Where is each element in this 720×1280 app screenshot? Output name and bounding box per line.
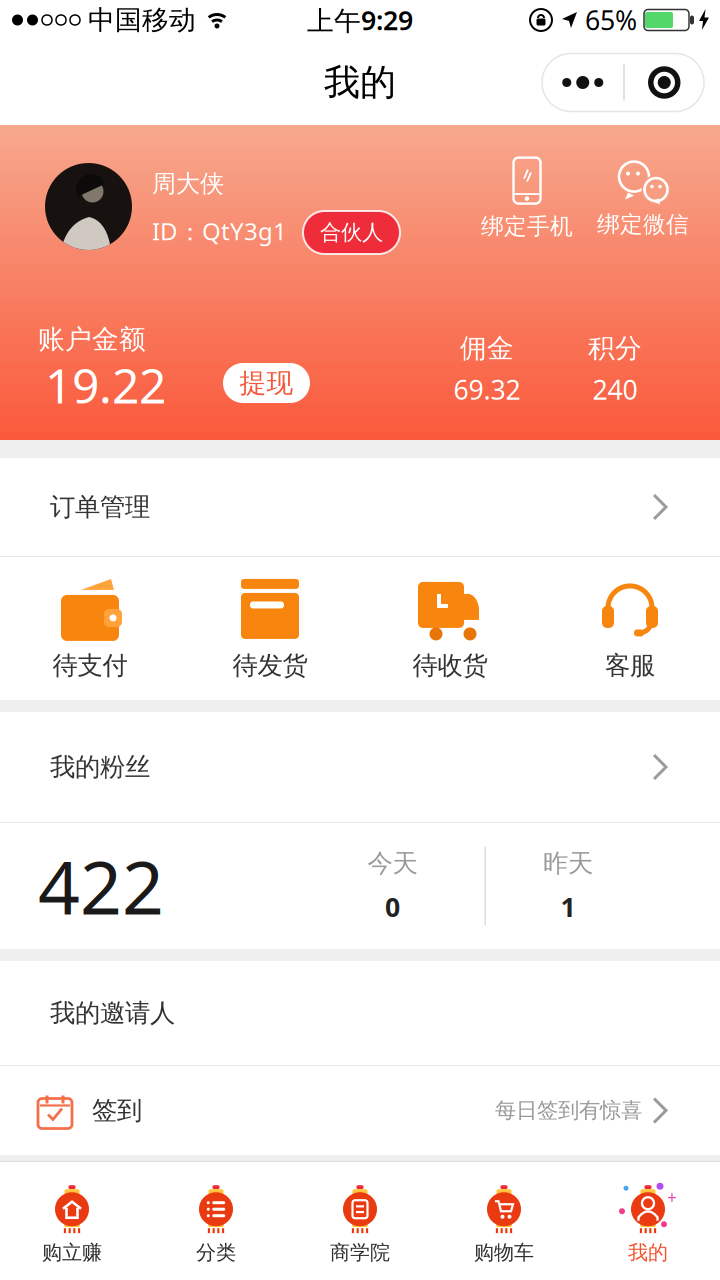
button[interactable]: 客服	[540, 576, 720, 681]
staticText: 合伙人	[320, 219, 383, 246]
staticText: 购物车	[474, 1240, 534, 1265]
button[interactable]: 待支付	[0, 576, 180, 681]
staticText: 待收货	[412, 650, 487, 681]
staticText: ID：QtY3g1	[152, 215, 287, 247]
staticText: 客服	[605, 650, 655, 681]
staticText: 我的粉丝	[50, 751, 150, 782]
staticText: 我的邀请人	[50, 997, 175, 1028]
staticText: 待支付	[52, 650, 127, 681]
staticText: 65%	[585, 2, 637, 38]
staticText: 每日签到有惊喜	[495, 1097, 642, 1124]
button[interactable]: 购立赚	[0, 1158, 144, 1280]
staticText: 周大侠	[152, 169, 224, 198]
button[interactable]: 绑定手机	[455, 155, 599, 243]
staticText: 19.22	[45, 353, 166, 417]
staticText: +	[667, 1186, 677, 1209]
button[interactable]: 合伙人	[303, 211, 400, 254]
staticText: 待发货	[232, 650, 307, 681]
button[interactable]: 提现	[223, 363, 310, 403]
button[interactable]	[542, 53, 704, 111]
button[interactable]: +	[576, 1158, 720, 1280]
staticText: 1	[560, 889, 575, 924]
staticText: 我的	[628, 1240, 668, 1265]
staticText: 积分	[588, 332, 642, 365]
staticText: 签到	[92, 1095, 142, 1126]
button[interactable]: 分类	[144, 1158, 288, 1280]
staticText: 分类	[196, 1240, 236, 1265]
button[interactable]: 待发货	[180, 576, 360, 681]
staticText: 422	[38, 837, 164, 935]
staticText: 69.32	[453, 372, 520, 407]
button[interactable]: 订单管理	[0, 458, 720, 556]
staticText: 账户金额	[38, 323, 146, 356]
staticText: 今天	[367, 848, 417, 879]
staticText: 订单管理	[50, 491, 150, 522]
staticText: 240	[592, 372, 637, 407]
staticText: 我的	[324, 60, 396, 105]
staticText: 佣金	[460, 332, 514, 365]
staticText: 绑定微信	[597, 211, 689, 238]
button[interactable]: 我的邀请人	[0, 961, 720, 1065]
button[interactable]: 商学院	[288, 1158, 432, 1280]
staticText: 昨天	[543, 848, 593, 879]
staticText: 商学院	[330, 1240, 390, 1265]
staticText: 0	[385, 889, 400, 924]
staticText: 上午9:29	[307, 2, 413, 38]
button[interactable]: 我的粉丝	[0, 712, 720, 822]
staticText: 提现	[239, 367, 293, 399]
button[interactable]: 待收货	[360, 576, 540, 681]
button[interactable]: 签到	[0, 1066, 720, 1155]
staticText: 绑定手机	[481, 213, 573, 240]
staticText: 中国移动	[88, 4, 196, 36]
button[interactable]: 绑定微信	[577, 155, 709, 243]
button[interactable]: 购物车	[432, 1158, 576, 1280]
staticText: 购立赚	[42, 1240, 102, 1265]
